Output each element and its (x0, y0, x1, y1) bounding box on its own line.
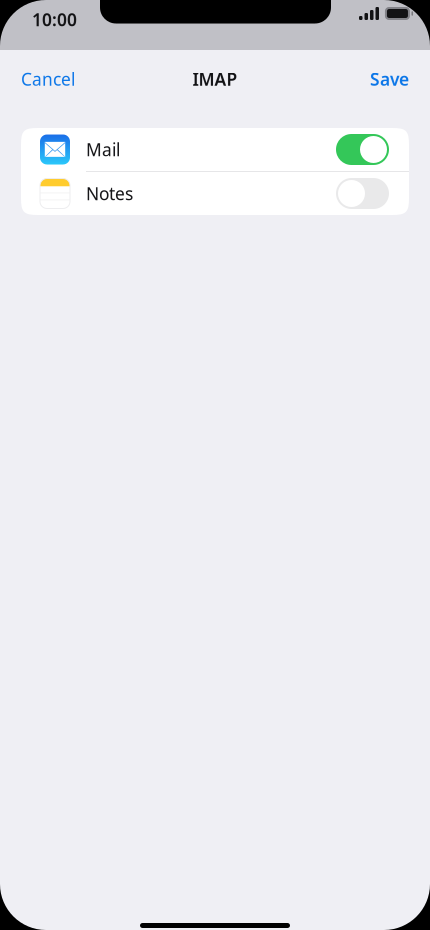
button[interactable]: Mail (21, 128, 409, 171)
staticText: Cancel (21, 67, 75, 90)
button[interactable]: Cancel (21, 59, 87, 98)
button[interactable]: Save (358, 59, 409, 98)
staticText: 10:00 (32, 8, 77, 31)
staticText: IMAP (192, 67, 237, 90)
button[interactable]: Notes (21, 172, 409, 215)
staticText: Notes (86, 182, 133, 205)
staticText: Mail (86, 138, 120, 161)
staticText: Save (370, 67, 409, 90)
